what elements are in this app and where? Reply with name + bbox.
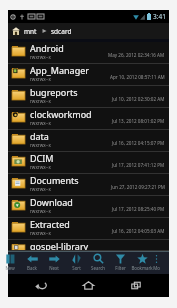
staticText: rwxrwx--x <box>30 98 51 104</box>
button[interactable]: Sort <box>65 251 87 274</box>
staticText: Jul 13, 2012 08:01:02 PM <box>112 118 165 124</box>
staticText: Jul 16, 2012 04:15:07 PM <box>112 140 165 146</box>
staticText: Bookmarks <box>131 265 153 271</box>
staticText: clockworkmod <box>30 108 92 120</box>
staticText: rwxrwx--x <box>30 120 51 126</box>
button[interactable]: Root folder <box>8 23 169 39</box>
staticText: Apr 10, 2012 08:57:11 AM <box>110 74 165 80</box>
button[interactable]: Download <box>8 196 169 218</box>
button[interactable]: Filter <box>109 251 131 274</box>
button[interactable]: Android <box>8 42 169 64</box>
button[interactable]: bugreports <box>8 86 169 108</box>
button[interactable]: data <box>8 130 169 152</box>
staticText: Jul 17, 2012 07:41:12 PM <box>112 162 165 168</box>
staticText: New <box>5 265 15 271</box>
staticText: More <box>153 265 160 271</box>
staticText: Search <box>91 265 105 271</box>
staticText: Sort <box>72 265 81 271</box>
button[interactable]: More <box>153 251 160 274</box>
staticText: May 26, 2012 02:34:16 AM <box>108 52 165 58</box>
button[interactable]: Back <box>21 251 43 274</box>
button[interactable]: DCIM <box>8 152 169 174</box>
staticText: sdcard <box>51 27 72 36</box>
button[interactable]: Back <box>8 274 74 297</box>
staticText: App_Manager <box>30 64 89 76</box>
staticText: rwxrwx--x <box>30 164 51 170</box>
button[interactable]: clockworkmod <box>8 108 169 130</box>
other: Root folder <box>12 27 20 35</box>
staticText: rwxrwx--x <box>30 142 51 148</box>
staticText: Extracted <box>30 218 70 230</box>
button[interactable]: gospel-library <box>8 240 169 251</box>
staticText: rwxrwx--x <box>30 76 51 82</box>
staticText: Jul 17, 2012 08:25:40 PM <box>112 206 165 212</box>
staticText: 3:41 <box>153 12 166 21</box>
staticText: rwxrwx--x <box>30 208 51 214</box>
button[interactable]: New <box>0 251 21 274</box>
staticText: Jun 27, 2012 09:27:21 PM <box>111 184 165 190</box>
staticText: Documents <box>30 174 79 186</box>
staticText: Back <box>27 265 37 271</box>
button[interactable]: Home <box>74 274 103 297</box>
staticText: mnt <box>24 27 37 36</box>
staticText: DCIM <box>30 152 54 164</box>
button[interactable]: Documents <box>8 174 169 196</box>
button[interactable]: Bookmarks <box>131 251 153 274</box>
staticText: rwxrwx--x <box>30 54 51 60</box>
staticText: rwxrwx--x <box>30 230 51 236</box>
staticText: Jul 10, 2012 02:30:02 AM <box>112 96 165 102</box>
button[interactable]: Next <box>43 251 65 274</box>
button[interactable]: Extracted <box>8 218 169 240</box>
staticText: Jul 16, 2012 04:05:03 AM <box>112 228 165 234</box>
staticText: gospel-library <box>30 240 89 251</box>
staticText: Android <box>30 42 64 54</box>
staticText: Download <box>30 196 73 208</box>
button[interactable]: Search <box>87 251 109 274</box>
staticText: bugreports <box>30 86 78 98</box>
staticText: Next <box>49 265 59 271</box>
staticText: rwxrwx--x <box>30 186 51 192</box>
button[interactable]: App_Manager <box>8 64 169 86</box>
button[interactable]: Recent apps <box>103 274 169 297</box>
staticText: data <box>30 130 49 142</box>
staticText: Filter <box>115 265 126 271</box>
